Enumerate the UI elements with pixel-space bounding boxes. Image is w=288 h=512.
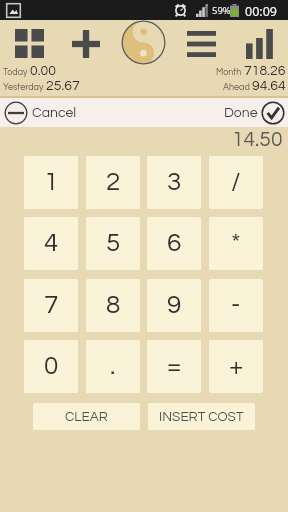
staticText: 25.67 [46, 79, 80, 93]
staticText: . [110, 353, 116, 380]
staticText: - [231, 292, 241, 319]
button[interactable]: INSERT COST [148, 403, 255, 430]
button[interactable]: 0 [24, 340, 78, 393]
button[interactable]: Menu [187, 31, 216, 57]
button[interactable]: 1 [24, 156, 78, 209]
button[interactable]: Add [72, 30, 100, 58]
staticText: * [231, 230, 241, 257]
staticText: 8 [106, 292, 121, 319]
staticText: Month [216, 68, 242, 77]
staticText: 7 [44, 292, 59, 319]
button[interactable]: 8 [86, 279, 140, 332]
staticText: Today [3, 68, 28, 77]
staticText: 3 [167, 169, 182, 196]
button[interactable]: Balance [121, 20, 166, 65]
button[interactable]: 4 [24, 217, 78, 270]
staticText: 14.50 [232, 129, 283, 151]
button[interactable]: Done [224, 101, 285, 125]
staticText: 4 [44, 230, 59, 257]
button[interactable]: Cancel [4, 101, 77, 125]
staticText: Cancel [32, 106, 77, 120]
button[interactable]: 9 [147, 279, 201, 332]
button[interactable]: = [147, 340, 201, 393]
button[interactable]: * [209, 217, 263, 270]
staticText: + [229, 353, 244, 380]
staticText: Yesterday [3, 83, 44, 92]
staticText: 9 [167, 292, 182, 319]
staticText: 00:09 [245, 3, 277, 20]
staticText: 1 [44, 169, 59, 196]
staticText: = [167, 353, 182, 380]
staticText: CLEAR [65, 410, 108, 424]
button[interactable]: Statistics [246, 29, 273, 59]
staticText: Done [224, 106, 258, 120]
staticText: 718.26 [244, 64, 286, 78]
staticText: / [231, 169, 241, 196]
button[interactable]: + [209, 340, 263, 393]
button[interactable]: . [86, 340, 140, 393]
button[interactable]: 2 [86, 156, 140, 209]
staticText: Ahead [223, 83, 250, 92]
button[interactable]: - [209, 279, 263, 332]
button[interactable]: CLEAR [33, 403, 140, 430]
button[interactable]: / [209, 156, 263, 209]
button[interactable]: 3 [147, 156, 201, 209]
staticText: 2 [106, 169, 121, 196]
staticText: 6 [167, 230, 182, 257]
staticText: 0.00 [30, 64, 56, 78]
staticText: 0 [44, 353, 59, 380]
staticText: 94.64 [252, 79, 286, 93]
staticText: INSERT COST [159, 410, 244, 424]
button[interactable]: 7 [24, 279, 78, 332]
staticText: 59% [212, 4, 231, 17]
button[interactable]: 5 [86, 217, 140, 270]
staticText: 5 [106, 230, 121, 257]
button[interactable]: Dashboard [15, 29, 44, 58]
button[interactable]: 6 [147, 217, 201, 270]
